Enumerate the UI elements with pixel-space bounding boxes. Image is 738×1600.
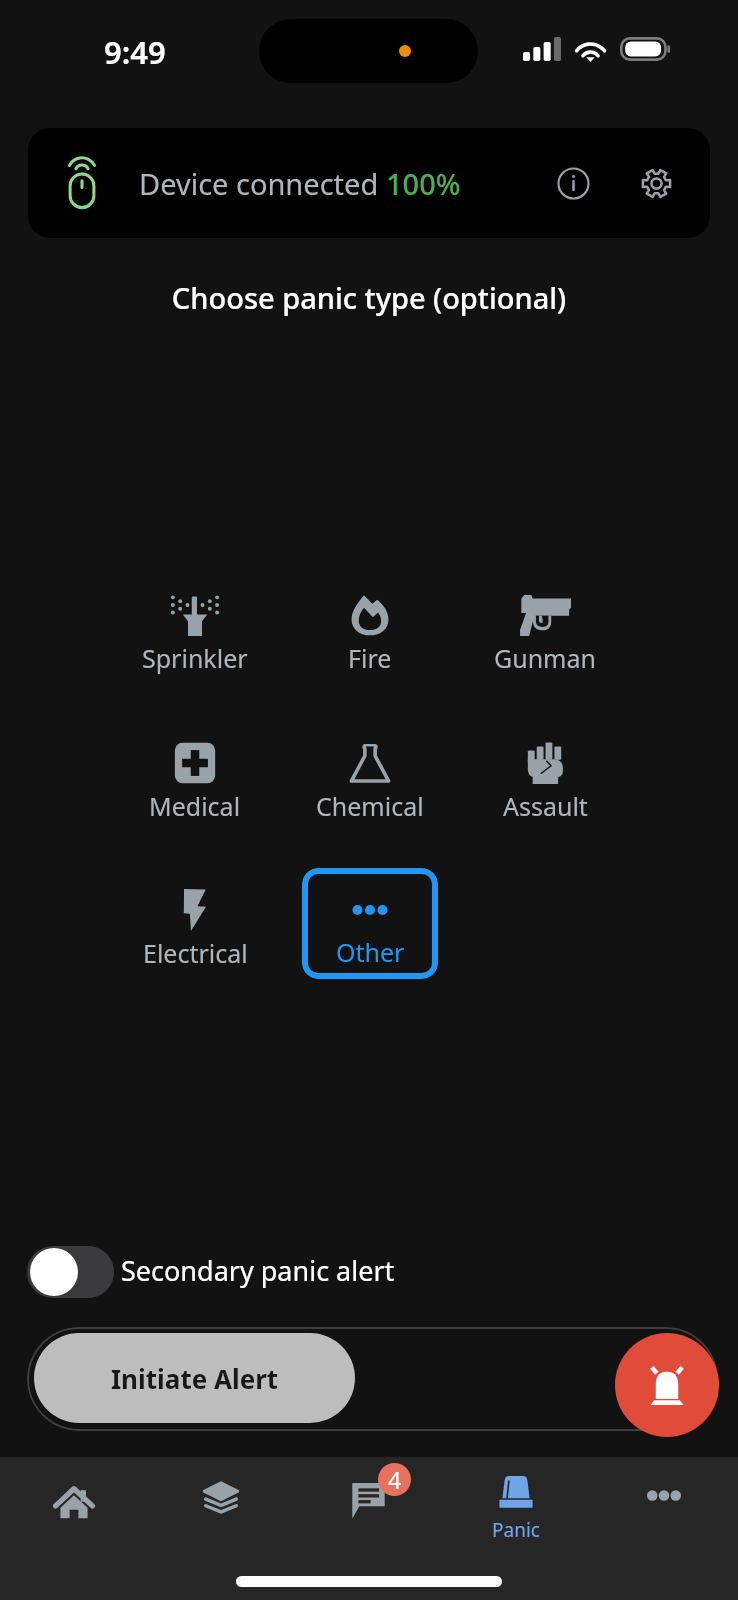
staticText: Device connected xyxy=(139,164,386,203)
staticText: Sprinkler xyxy=(142,641,248,675)
button[interactable]: Gunman xyxy=(465,584,625,675)
staticText: Chemical xyxy=(316,789,424,823)
button[interactable]: Assault xyxy=(465,732,625,823)
button[interactable]: Messages xyxy=(294,1457,442,1539)
staticText: Assault xyxy=(503,789,588,823)
button[interactable]: Panic alarm xyxy=(615,1333,719,1437)
staticText: 9:49 xyxy=(104,31,166,73)
button[interactable]: Information xyxy=(538,128,608,238)
staticText: Electrical xyxy=(143,936,248,970)
button[interactable]: Fire xyxy=(290,584,450,675)
staticText: Other xyxy=(336,935,405,969)
button[interactable]: Chemical xyxy=(290,732,450,823)
button[interactable]: Home xyxy=(0,1457,147,1539)
staticText: 4 xyxy=(388,1464,402,1495)
staticText: Medical xyxy=(149,789,241,823)
staticText: Initiate Alert xyxy=(111,1361,279,1396)
staticText: Secondary panic alert xyxy=(121,1252,395,1289)
button[interactable]: Sprinkler xyxy=(115,584,275,675)
staticText: Fire xyxy=(348,641,392,675)
staticText: Gunman xyxy=(494,641,596,675)
button[interactable]: Device connected xyxy=(28,128,710,238)
button[interactable]: Panic xyxy=(442,1457,590,1539)
button[interactable]: More xyxy=(590,1457,738,1539)
button[interactable]: Initiate Alert xyxy=(34,1333,355,1423)
button[interactable]: Settings xyxy=(621,128,691,238)
button[interactable]: Layers xyxy=(147,1457,294,1539)
button[interactable]: Medical xyxy=(115,732,275,823)
button[interactable]: Electrical xyxy=(115,879,275,970)
button[interactable] xyxy=(27,1246,114,1298)
staticText: 100% xyxy=(386,164,461,203)
staticText: Choose panic type (optional) xyxy=(0,278,738,317)
staticText: Panic xyxy=(492,1517,540,1543)
button[interactable]: Other xyxy=(302,868,438,979)
